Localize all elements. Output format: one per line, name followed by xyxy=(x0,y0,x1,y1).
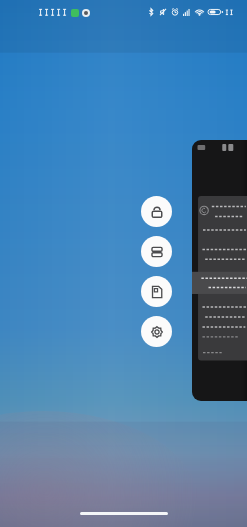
button[interactable]: Lock app xyxy=(141,196,172,227)
button[interactable]: App settings xyxy=(141,316,172,347)
button[interactable]: Screenshot xyxy=(141,276,172,307)
button[interactable] xyxy=(192,140,247,401)
button[interactable]: Split screen xyxy=(141,236,172,267)
